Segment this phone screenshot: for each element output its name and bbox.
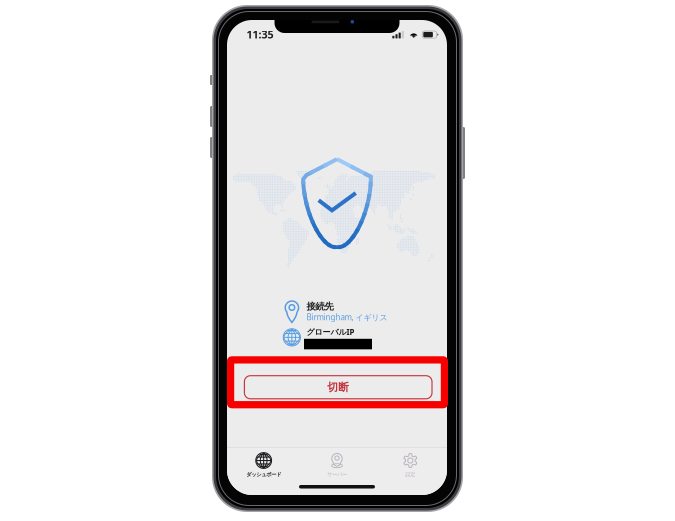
button[interactable]: ダッシュボード xyxy=(227,453,300,478)
staticText: Birmingham, イギリス xyxy=(306,312,387,322)
button[interactable]: 設定 xyxy=(374,453,447,478)
button[interactable]: 切断 xyxy=(244,376,432,399)
button[interactable]: サーバー xyxy=(300,453,374,478)
staticText: 設定 xyxy=(405,471,415,478)
staticText: 接続先 xyxy=(306,301,333,312)
staticText: サーバー xyxy=(327,471,347,478)
staticText: 切断 xyxy=(327,381,349,394)
staticText: 11:35 xyxy=(247,27,274,41)
staticText: グローバルIP xyxy=(306,326,354,337)
staticText: ダッシュボード xyxy=(246,471,281,478)
